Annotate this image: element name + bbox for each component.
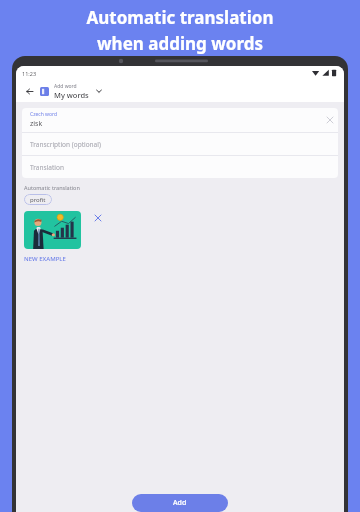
staticText: Add — [173, 498, 187, 508]
staticText: My words — [54, 90, 89, 100]
staticText: Transcription (optional) — [30, 140, 101, 149]
staticText: Automatic translation — [86, 6, 274, 29]
staticText: 11:23 — [22, 70, 37, 77]
button[interactable]: Transcription (optional) — [22, 133, 338, 155]
button[interactable]: profit — [24, 194, 52, 205]
button[interactable]: Remove example — [91, 211, 105, 225]
staticText: zisk — [30, 119, 43, 129]
button[interactable]: NEW EXAMPLE — [24, 255, 66, 263]
staticText: Czech word — [30, 111, 58, 118]
button[interactable]: Add — [132, 494, 228, 512]
button[interactable]: Clear — [322, 112, 338, 128]
button[interactable]: Choose list — [94, 86, 104, 96]
staticText: when adding words — [97, 32, 263, 55]
staticText: Translation — [30, 163, 64, 172]
button[interactable]: Back — [22, 84, 36, 98]
button[interactable]: Translation — [22, 156, 338, 178]
button[interactable]: Example image — [24, 211, 81, 249]
staticText: Add word — [54, 83, 77, 90]
staticText: Automatic translation — [24, 184, 80, 191]
staticText: profit — [30, 196, 46, 204]
button[interactable]: Czech word — [22, 108, 338, 132]
